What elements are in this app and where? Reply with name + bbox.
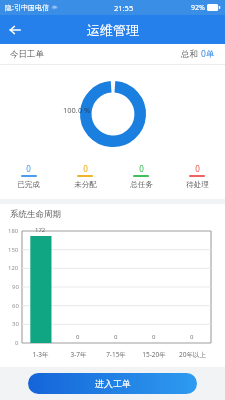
staticText: 180 [8,227,19,235]
staticText: 20年以上 [179,350,206,359]
button[interactable]: Back [0,15,29,44]
staticText: 3-7年 [70,350,87,359]
staticText: 待处理 [186,180,209,189]
staticText: 15-20年 [142,350,166,359]
staticText: 已完成 [17,180,40,189]
staticText: 30 [12,320,19,328]
staticText: 90 [12,283,19,291]
staticText: 92% [191,3,205,13]
staticText: 总任务 [130,180,153,189]
button[interactable]: 进入工单 [28,373,197,394]
staticText: 21:55 [114,3,134,13]
staticText: 0 [139,163,144,174]
button[interactable]: 0 [113,163,169,189]
staticText: 总和 [181,48,201,60]
staticText: 今日工单 [10,49,44,60]
button[interactable]: 0 [0,163,57,189]
staticText: 0 [201,48,206,60]
staticText: 60 [12,302,19,310]
staticText: 1-3年 [32,350,49,359]
staticText: 隐:引中国电信 [5,3,49,13]
staticText: 单 [206,49,215,60]
staticText: 0 [190,333,194,341]
staticText: 0 [114,333,118,341]
staticText: 150 [8,246,19,254]
staticText: 0 [15,339,19,347]
staticText: 进入工单 [95,378,131,389]
staticText: 120 [8,264,19,272]
button[interactable]: 0 [169,163,225,189]
staticText: 0 [76,333,80,341]
staticText: 系统生命周期 [10,209,61,220]
staticText: 0 [83,163,88,174]
staticText: 0 [26,163,31,174]
staticText: 未分配 [74,180,97,189]
staticText: 0 [152,333,156,341]
staticText: 172 [35,226,46,234]
staticText: 100.0 % [63,105,91,115]
staticText: 7-15年 [106,350,126,359]
staticText: 0 [195,163,200,174]
staticText: 运维管理 [87,22,139,38]
button[interactable]: 0 [57,163,113,189]
